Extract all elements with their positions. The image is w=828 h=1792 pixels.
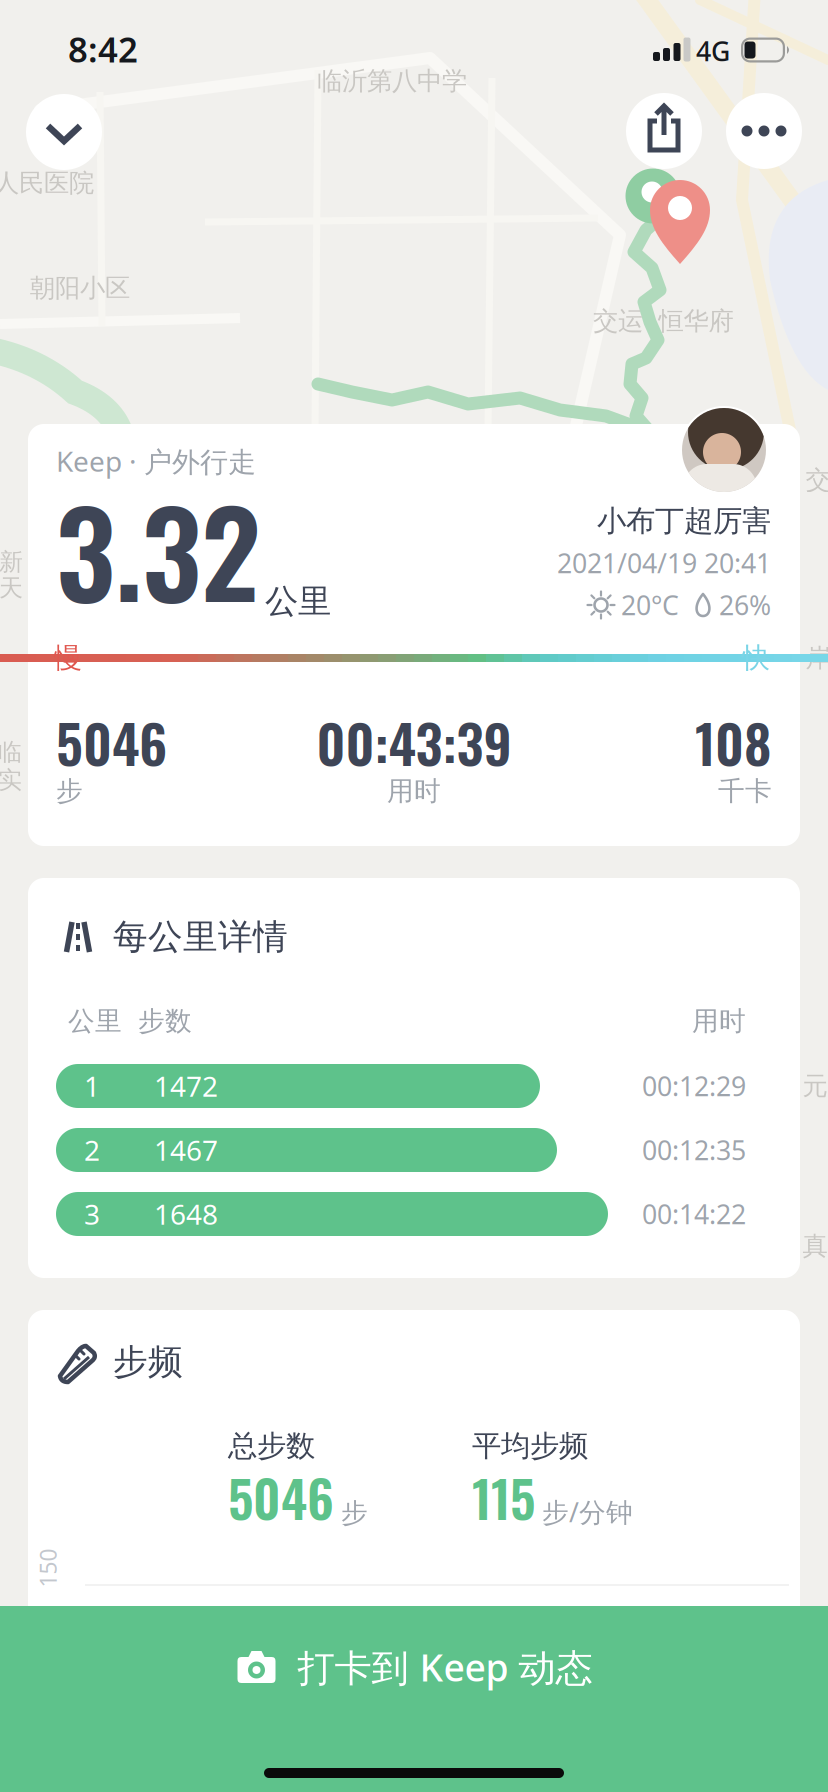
staticText: 千卡 bbox=[718, 775, 772, 807]
staticText: 小布丁超厉害 bbox=[597, 503, 771, 539]
staticText: 8:42 bbox=[68, 26, 138, 72]
staticText: 4G bbox=[696, 33, 730, 69]
staticText: 元 bbox=[802, 1070, 827, 1101]
button[interactable]: Share bbox=[626, 93, 702, 169]
staticText: 交 bbox=[805, 464, 828, 495]
staticText: 平均步频 bbox=[472, 1428, 588, 1464]
staticText: 用时 bbox=[692, 1005, 746, 1037]
staticText: 朝阳小区 bbox=[30, 272, 130, 303]
staticText: 人民医院 bbox=[0, 167, 94, 198]
staticText: 公里 bbox=[68, 1005, 122, 1037]
staticText: 新 bbox=[0, 547, 23, 577]
staticText: 00:43:39 bbox=[316, 702, 511, 781]
staticText: 26% bbox=[719, 587, 771, 623]
staticText: 步频 bbox=[113, 1341, 183, 1383]
staticText: 总步数 bbox=[228, 1428, 315, 1464]
staticText: Keep · 户外行走 bbox=[56, 442, 256, 480]
staticText: 00:12:35 bbox=[642, 1132, 746, 1168]
staticText: 1472 bbox=[154, 1067, 218, 1105]
staticText: 临 bbox=[0, 737, 22, 767]
staticText: 步 bbox=[341, 1497, 368, 1530]
staticText: 1 bbox=[84, 1067, 100, 1105]
staticText: 真 bbox=[802, 1230, 827, 1261]
staticText: 2021/04/19 20:41 bbox=[557, 545, 771, 581]
staticText: 临沂第八中学 bbox=[317, 65, 467, 96]
staticText: 步 bbox=[56, 775, 83, 807]
staticText: 3.32 bbox=[56, 462, 260, 636]
staticText: 公里 bbox=[265, 581, 331, 622]
button[interactable]: More bbox=[726, 93, 802, 169]
staticText: 108 bbox=[695, 702, 772, 781]
staticText: 步/分钟 bbox=[542, 1494, 633, 1529]
staticText: 115 bbox=[472, 1459, 535, 1535]
staticText: 00:14:22 bbox=[642, 1196, 746, 1232]
button[interactable]: Close bbox=[26, 94, 102, 170]
staticText: 交运 bbox=[593, 305, 643, 336]
staticText: 岸 bbox=[805, 642, 828, 673]
staticText: 5046 bbox=[56, 702, 167, 781]
staticText: 2 bbox=[84, 1131, 100, 1169]
staticText: 3 bbox=[84, 1195, 100, 1233]
staticText: 1467 bbox=[154, 1131, 218, 1169]
staticText: 步数 bbox=[138, 1005, 192, 1037]
staticText: 快 bbox=[742, 641, 770, 675]
staticText: 00:12:29 bbox=[642, 1068, 746, 1104]
staticText: 恒华府 bbox=[658, 305, 733, 336]
staticText: 天 bbox=[0, 573, 23, 603]
staticText: 慢 bbox=[54, 641, 82, 675]
staticText: 5046 bbox=[228, 1459, 334, 1535]
button[interactable]: 打卡到 Keep 动态 bbox=[0, 1606, 828, 1792]
staticText: 用时 bbox=[387, 775, 441, 807]
staticText: 每公里详情 bbox=[113, 916, 288, 958]
staticText: 实 bbox=[0, 765, 22, 795]
staticText: 打卡到 Keep 动态 bbox=[297, 1642, 592, 1692]
staticText: 150 bbox=[28, 1553, 67, 1583]
staticText: 20°C bbox=[621, 587, 679, 623]
staticText: 1648 bbox=[154, 1195, 218, 1233]
